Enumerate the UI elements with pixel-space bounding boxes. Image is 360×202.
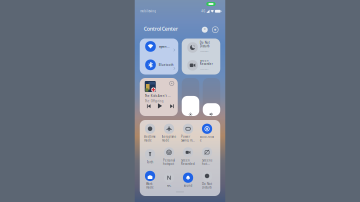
staticText: Do Not Disturb [200, 41, 210, 48]
button[interactable]: Screen Recorder [187, 59, 220, 74]
button[interactable]: Volume [203, 78, 220, 116]
button[interactable]: Next track [169, 103, 175, 109]
button[interactable]: Work mode [141, 170, 159, 191]
button[interactable]: Settings [212, 26, 219, 33]
staticText: Sound [183, 184, 192, 187]
button[interactable]: Screen Recorded [179, 146, 197, 167]
button[interactable]: Do Not Disturb [198, 170, 216, 191]
staticText: Suggestions [200, 50, 209, 52]
staticText: The Offspring [145, 99, 164, 103]
button[interactable]: Sound [179, 170, 197, 191]
staticText: Work mode [146, 182, 154, 189]
staticText: Bluetooth [159, 63, 174, 67]
button[interactable]: MyWiFi... [145, 41, 176, 52]
button[interactable]: Brightness [182, 78, 199, 116]
button[interactable]: Do Not Disturb [187, 41, 220, 57]
button[interactable]: Aeroplane mode [160, 122, 178, 143]
button[interactable]: Previous track [146, 103, 152, 109]
staticText: mobilewing [140, 9, 156, 13]
staticText: Screen Recorder [200, 59, 213, 66]
staticText: Torch [146, 160, 153, 164]
staticText: MyWiFi... [159, 45, 170, 48]
staticText: Personal hotspot [163, 159, 175, 166]
staticText: 4G [201, 9, 205, 13]
staticText: The Kids Aren't ... [145, 94, 171, 98]
button[interactable]: Account [201, 26, 208, 33]
staticText: Bedtime mode [144, 135, 156, 142]
button[interactable]: Cast [169, 80, 175, 86]
button[interactable]: Auto-rotat e [198, 122, 216, 143]
button[interactable]: NFC [160, 170, 178, 191]
button[interactable]: Bedtime mode [141, 122, 159, 143]
staticText: Aeroplane mode [162, 135, 177, 142]
button[interactable]: Play [157, 103, 163, 109]
staticText: Screens hot... [202, 159, 212, 166]
button[interactable]: Screens hot... [198, 146, 216, 167]
staticText: NFC [166, 184, 171, 187]
staticText: Screen Recorded [181, 159, 195, 166]
button[interactable]: Power Saving m... [179, 122, 197, 143]
staticText: Auto-rotat e [200, 135, 214, 142]
staticText: Suggestions [200, 68, 209, 70]
staticText: Control Center [144, 25, 178, 32]
button[interactable]: Personal hotspot [160, 146, 178, 167]
staticText: Do Not Disturb [202, 182, 212, 189]
button[interactable]: Bluetooth [145, 59, 176, 70]
button[interactable]: Torch [141, 146, 159, 167]
staticText: Power Saving m... [181, 135, 195, 142]
